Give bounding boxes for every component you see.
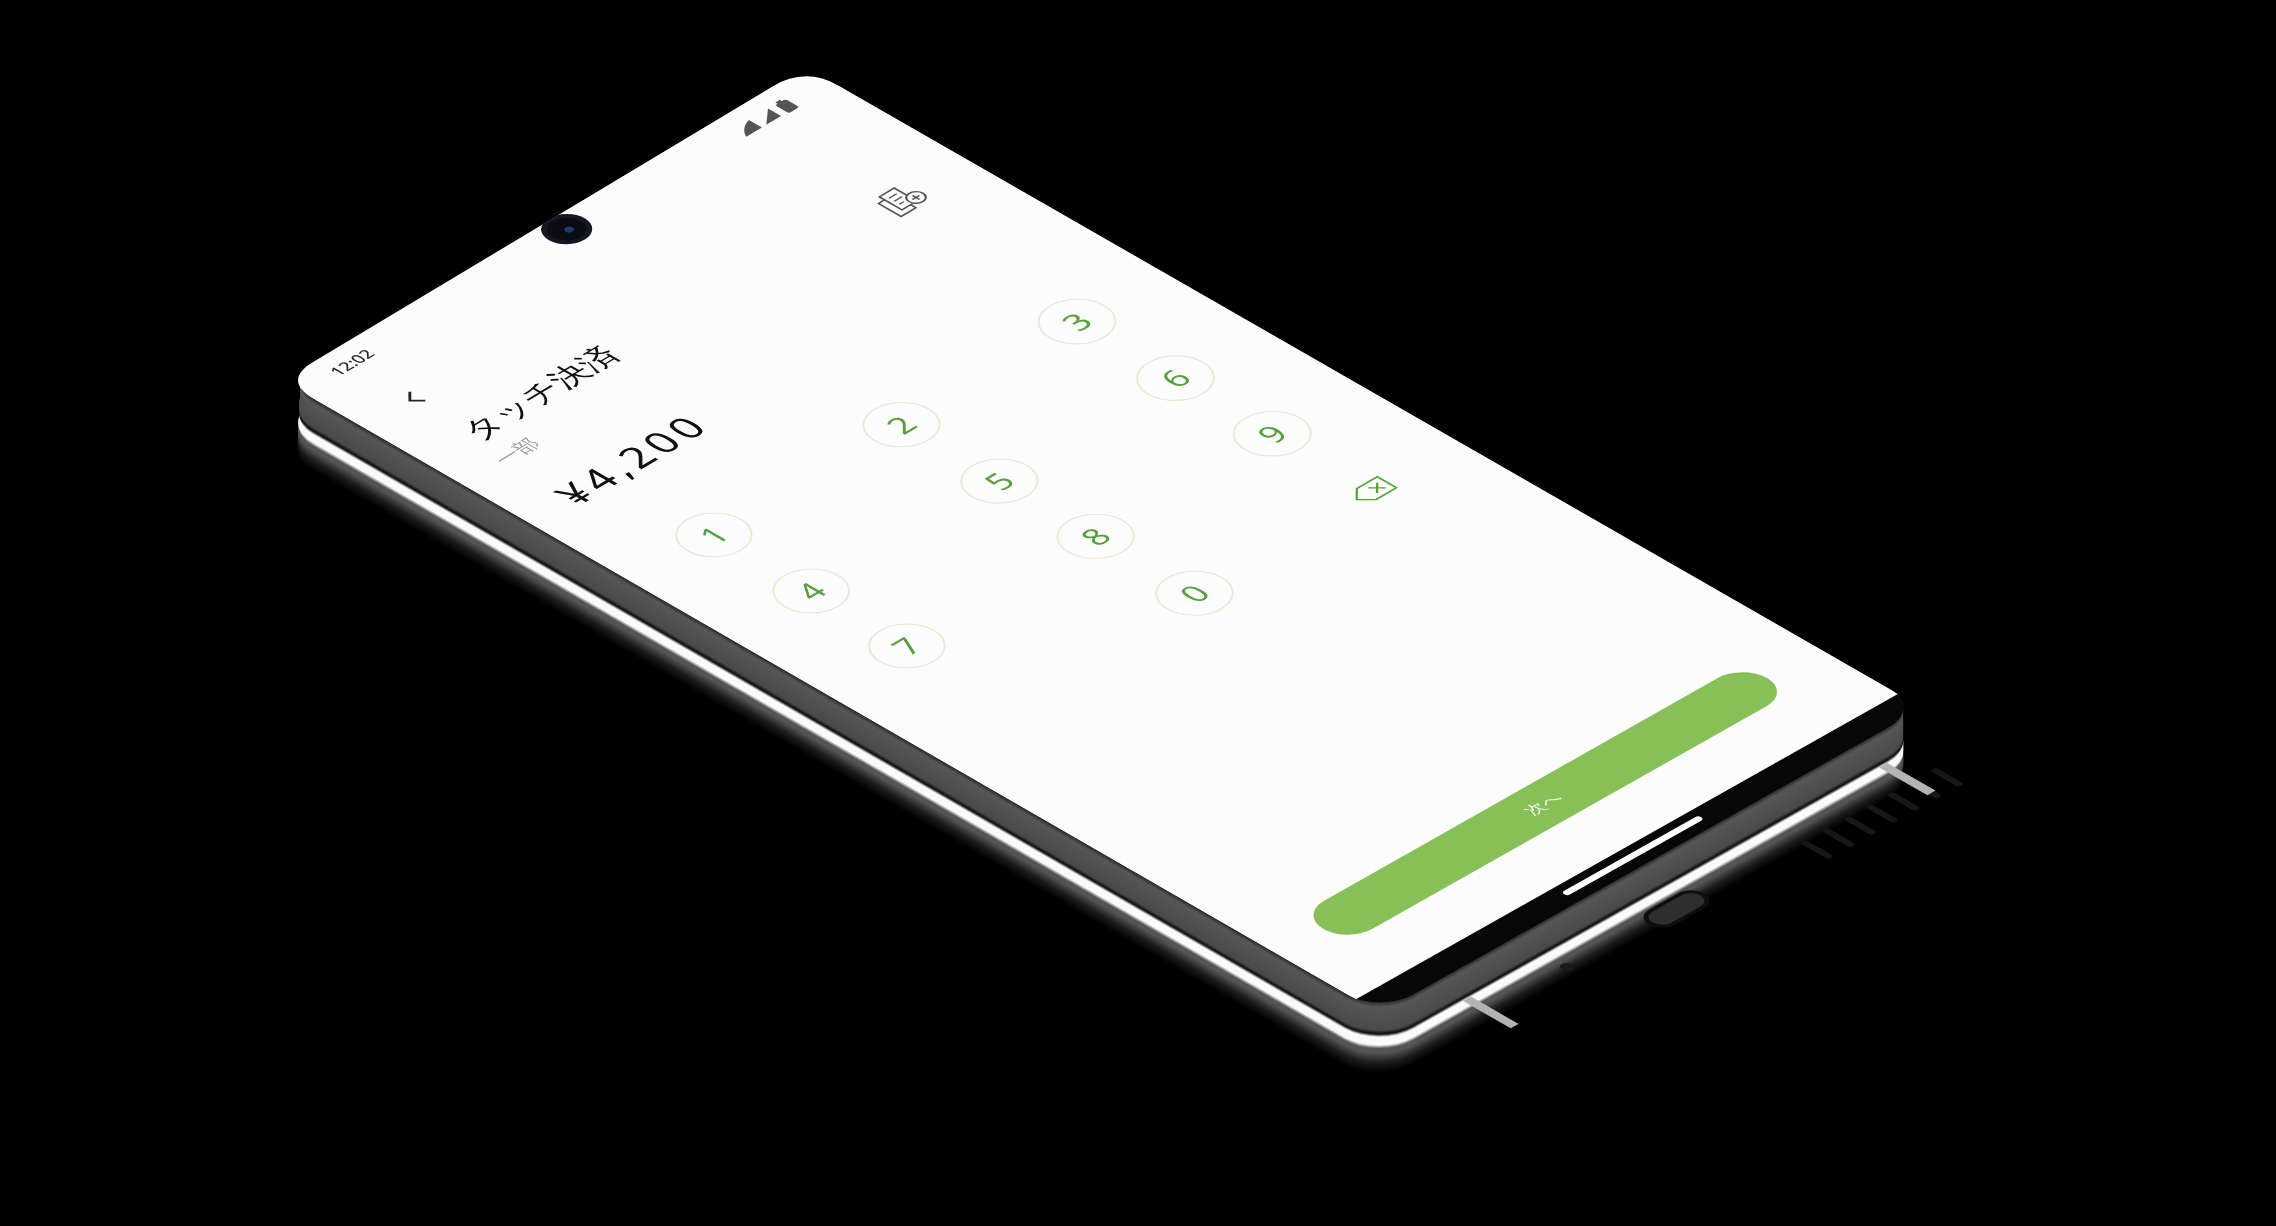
button[interactable]: Payment keypad (0, 0, 2276, 1226)
